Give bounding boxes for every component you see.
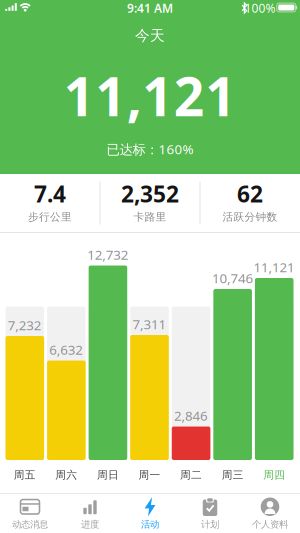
staticText: 卡路里 [133, 210, 166, 223]
staticText: 周一 [138, 468, 160, 481]
staticText: 9:41 AM [127, 0, 173, 16]
staticText: 今天 [135, 26, 165, 44]
staticText: 7,311 [132, 315, 166, 333]
staticText: 周五 [14, 468, 36, 481]
staticText: 周四 [263, 468, 285, 481]
staticText: 步行公里 [28, 210, 72, 223]
button[interactable]: 进度 [60, 493, 120, 533]
staticText: 2,846 [174, 407, 208, 424]
button[interactable]: 动态消息 [0, 493, 60, 533]
staticText: 12,732 [87, 246, 129, 263]
staticText: 已达标：160% [106, 140, 193, 158]
staticText: 周二 [180, 468, 202, 481]
button[interactable]: 活动 [120, 493, 180, 533]
staticText: 进度 [81, 519, 99, 530]
staticText: 100% [244, 0, 275, 16]
button[interactable]: 计划 [180, 493, 240, 533]
staticText: 个人资料 [252, 519, 288, 530]
staticText: 7.4 [34, 179, 66, 209]
staticText: 2,352 [121, 179, 179, 209]
staticText: 周三 [222, 468, 244, 481]
staticText: 计划 [201, 519, 219, 530]
staticText: 7,232 [8, 316, 42, 334]
staticText: 活跃分钟数 [222, 210, 277, 223]
staticText: 活动 [141, 519, 159, 530]
staticText: 动态消息 [12, 519, 48, 530]
staticText: 周日 [97, 468, 119, 481]
staticText: 62 [237, 179, 263, 209]
staticText: 周六 [55, 468, 77, 481]
staticText: 6,632 [49, 341, 83, 358]
staticText: 11,121 [253, 258, 295, 276]
staticText: 11,121 [64, 60, 236, 131]
staticText: 10,746 [212, 269, 253, 287]
button[interactable]: 个人资料 [240, 493, 300, 533]
